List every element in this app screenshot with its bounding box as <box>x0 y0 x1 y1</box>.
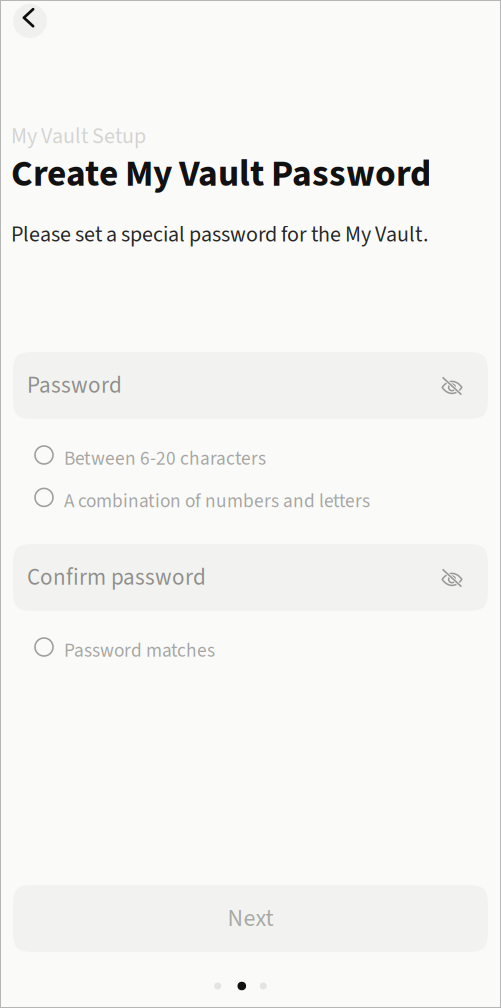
staticText: Please set a special password for the My… <box>11 219 428 250</box>
button[interactable]: Back <box>13 4 47 38</box>
staticText: Create My Vault Password <box>11 148 431 201</box>
button[interactable]: Show Password <box>432 365 472 405</box>
staticText: Password matches <box>64 637 215 664</box>
staticText: My Vault Setup <box>11 121 146 152</box>
staticText: Between 6-20 characters <box>64 445 266 472</box>
staticText: Password <box>27 369 122 402</box>
staticText: A combination of numbers and letters <box>64 487 370 515</box>
button[interactable]: Next <box>13 885 488 952</box>
button[interactable]: Show Confirm password <box>432 557 472 597</box>
staticText: Next <box>227 901 273 936</box>
staticText: Confirm password <box>27 561 206 594</box>
